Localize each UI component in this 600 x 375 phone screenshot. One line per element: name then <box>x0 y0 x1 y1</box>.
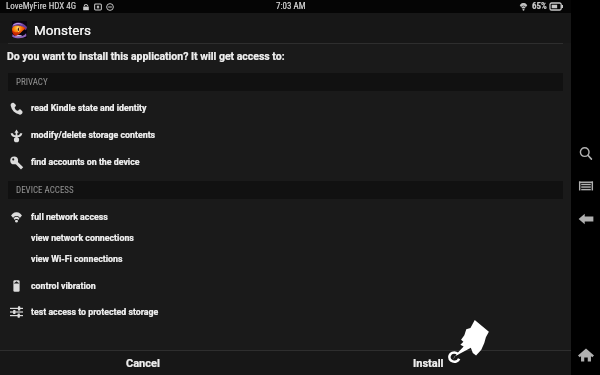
button[interactable]: control vibration <box>0 273 571 299</box>
button[interactable]: Back <box>578 211 594 227</box>
button[interactable]: view Wi-Fi connections <box>0 249 571 269</box>
staticText: test access to protected storage <box>31 307 159 317</box>
staticText: modify/delete storage contents <box>31 130 156 140</box>
staticText: find accounts on the device <box>31 157 140 167</box>
staticText: view Wi-Fi connections <box>31 254 123 264</box>
button[interactable]: test access to protected storage <box>0 299 571 325</box>
staticText: Cancel <box>126 357 160 370</box>
staticText: read Kindle state and identity <box>31 103 147 113</box>
staticText: PRIVACY <box>16 77 48 88</box>
staticText: Install <box>413 357 444 370</box>
staticText: LoveMyFire HDX 4G <box>6 1 77 12</box>
button[interactable]: find accounts on the device <box>0 149 571 175</box>
staticText: control vibration <box>31 281 96 291</box>
staticText: view network connections <box>31 233 134 243</box>
button[interactable]: Search <box>578 146 594 162</box>
staticText: Do you want to install this application?… <box>7 50 285 62</box>
button[interactable]: Install <box>285 351 571 375</box>
staticText: full network access <box>31 212 108 222</box>
button[interactable]: Menu <box>578 178 594 194</box>
button[interactable]: modify/delete storage contents <box>0 122 571 148</box>
button[interactable]: Cancel <box>0 351 285 375</box>
button[interactable]: view network connections <box>0 228 571 248</box>
staticText: DEVICE ACCESS <box>16 185 74 196</box>
staticText: 65% <box>532 1 547 12</box>
button[interactable]: Home <box>578 347 594 363</box>
button[interactable]: read Kindle state and identity <box>0 95 571 121</box>
staticText: Monsters <box>34 22 92 38</box>
button[interactable]: full network access <box>0 204 571 230</box>
staticText: 7:03 AM <box>276 1 306 12</box>
